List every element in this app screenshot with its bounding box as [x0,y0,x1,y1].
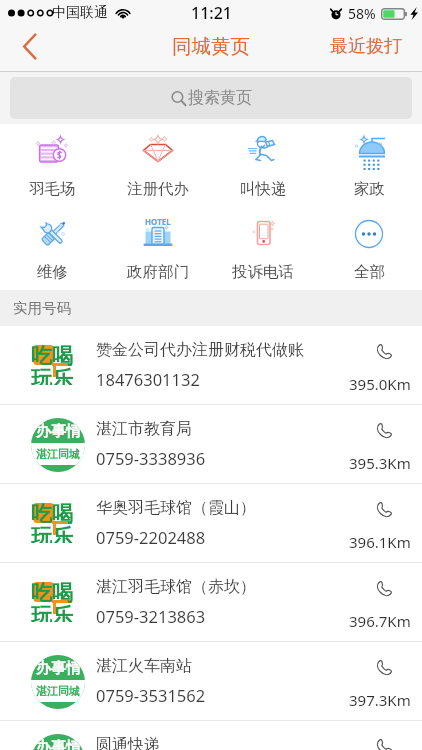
button[interactable]: Call [374,500,396,522]
staticText: 办事情 [36,738,81,750]
staticText: 吃 [31,580,52,606]
staticText: 11:21 [191,2,232,24]
staticText: 湛江同城 [36,447,80,461]
staticText: 最近拨打 [330,35,402,58]
staticText: 396.7Km [349,611,411,631]
button[interactable]: Call [374,658,396,680]
button[interactable]: 羽毛场 [0,124,105,207]
staticText: 乐 [52,603,73,622]
staticText: 叫快递 [240,179,287,199]
staticText: 搜索黄页 [188,88,252,108]
button[interactable]: 家政 [316,124,422,207]
button[interactable]: 办事情 [0,721,422,750]
button[interactable]: 维修 [0,207,105,290]
button[interactable]: 吃 [0,563,422,642]
staticText: 喝 [52,580,73,606]
staticText: 395.3Km [349,453,411,473]
staticText: 投诉电话 [232,262,294,282]
button[interactable]: Call [374,342,396,364]
staticText: 玩 [31,366,52,385]
staticText: 0759-3531562 [96,684,206,706]
staticText: 办事情 [36,422,81,441]
staticText: 圆通快递 [96,735,160,750]
button[interactable]: 办事情 [0,642,422,721]
button[interactable]: Call [374,421,396,443]
staticText: 吃 [31,501,52,527]
button[interactable]: 投诉电话 [210,207,316,290]
staticText: 喝 [52,501,73,527]
staticText: 羽毛场 [29,179,76,199]
staticText: 同城黄页 [172,34,250,59]
staticText: 华奥羽毛球馆（霞山） [96,498,256,518]
staticText: HOTEL [145,216,171,227]
staticText: 注册代办 [127,179,189,199]
staticText: 18476301132 [96,368,200,390]
staticText: 0759-2202488 [96,526,206,548]
staticText: 玩 [31,603,52,622]
button[interactable]: Call [374,737,396,750]
staticText: 湛江同城 [36,684,80,698]
staticText: 维修 [37,262,68,282]
staticText: 中国联通 [52,4,108,22]
button[interactable]: Back [0,23,56,69]
staticText: 396.1Km [349,532,411,552]
staticText: 办事情 [36,659,81,678]
staticText: 吃 [31,343,52,369]
button[interactable]: 最近拨打 [318,23,422,69]
staticText: 实用号码 [13,299,71,317]
button[interactable]: 办事情 [0,405,422,484]
staticText: 赞金公司代办注册财税代做账 [96,340,304,360]
staticText: 乐 [52,366,73,385]
button[interactable]: 全部 [316,207,422,290]
staticText: 政府部门 [127,262,189,282]
button[interactable]: Call [374,579,396,601]
staticText: 玩 [31,524,52,543]
staticText: 乐 [52,524,73,543]
button[interactable]: 注册代办 [105,124,210,207]
button[interactable]: 吃 [0,326,422,405]
staticText: 全部 [354,262,385,282]
button[interactable]: 搜索黄页 [10,77,412,119]
staticText: 家政 [354,179,385,199]
staticText: 395.0Km [349,374,411,394]
button[interactable]: 叫快递 [210,124,316,207]
staticText: 湛江市教育局 [96,419,192,439]
staticText: 0759-3338936 [96,447,206,469]
button[interactable]: 吃 [0,484,422,563]
staticText: 湛江火车南站 [96,656,192,676]
button[interactable]: HOTEL [105,207,210,290]
staticText: 湛江羽毛球馆（赤坎） [96,577,256,597]
staticText: 397.3Km [349,690,411,710]
staticText: 58% [348,4,376,23]
staticText: 0759-3213863 [96,605,206,627]
staticText: 喝 [52,343,73,369]
